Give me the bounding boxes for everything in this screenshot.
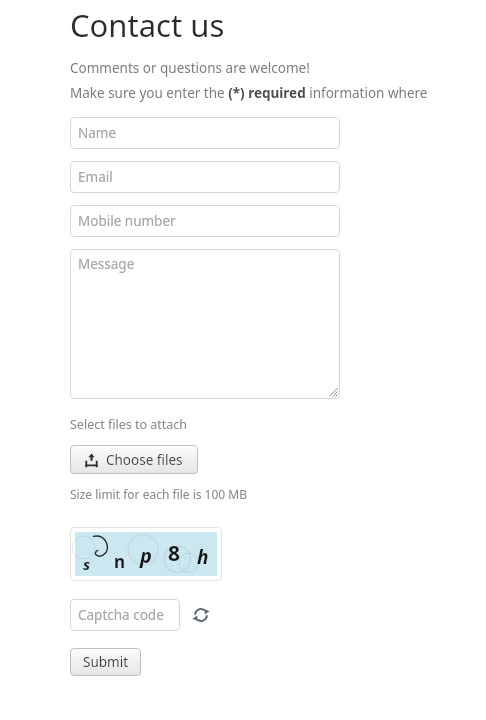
staticText: Submit [83, 653, 129, 671]
staticText: h [197, 544, 209, 570]
button[interactable]: Choose files [70, 445, 198, 474]
staticText: Contact us [70, 4, 225, 46]
staticText: n [114, 550, 126, 573]
button[interactable]: Captcha code [70, 599, 180, 631]
button[interactable]: Email [70, 161, 340, 193]
button[interactable]: s [75, 532, 217, 576]
staticText: Select files to attach [70, 416, 188, 433]
staticText: Size limit for each file is 100 MB [70, 486, 248, 502]
staticText: 8 [168, 539, 181, 568]
staticText: Make sure you enter the (*) required inf… [70, 84, 486, 102]
staticText: Comments or questions are welcome! [70, 59, 310, 77]
staticText: Choose files [106, 451, 183, 469]
staticText: s [83, 554, 91, 574]
staticText: Name [78, 124, 117, 142]
button[interactable]: Message [70, 249, 340, 399]
button[interactable]: Name [70, 117, 340, 149]
staticText: p [140, 542, 152, 569]
button[interactable]: Mobile number [70, 205, 340, 237]
staticText: Message [78, 255, 135, 273]
staticText: Captcha code [78, 606, 164, 624]
staticText: Email [78, 168, 113, 186]
staticText: Mobile number [78, 212, 176, 230]
button[interactable]: Refresh captcha [190, 604, 212, 626]
button[interactable]: Submit [70, 648, 141, 676]
